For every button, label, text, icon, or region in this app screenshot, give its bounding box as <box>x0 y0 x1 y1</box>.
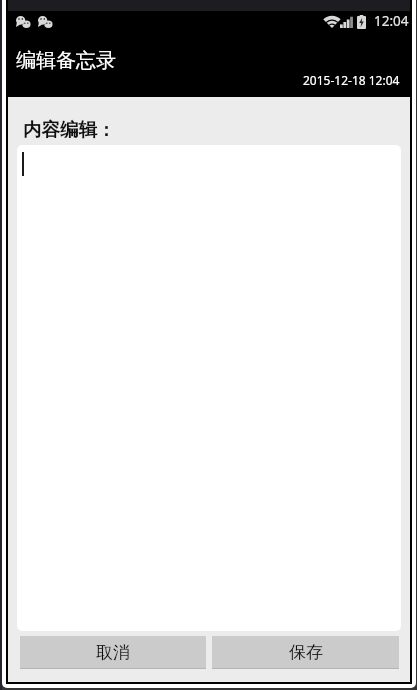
staticText: 保存 <box>289 642 323 663</box>
staticText: 内容编辑： <box>23 118 116 141</box>
button[interactable]: 保存 <box>212 636 399 669</box>
button[interactable]: 取消 <box>20 636 206 669</box>
staticText: 2015-12-18 12:04 <box>303 72 400 88</box>
button[interactable]: 备忘录内容输入框 <box>17 145 401 631</box>
staticText: 12:04 <box>374 12 409 30</box>
staticText: 取消 <box>96 642 130 663</box>
staticText: 编辑备忘录 <box>16 48 116 73</box>
